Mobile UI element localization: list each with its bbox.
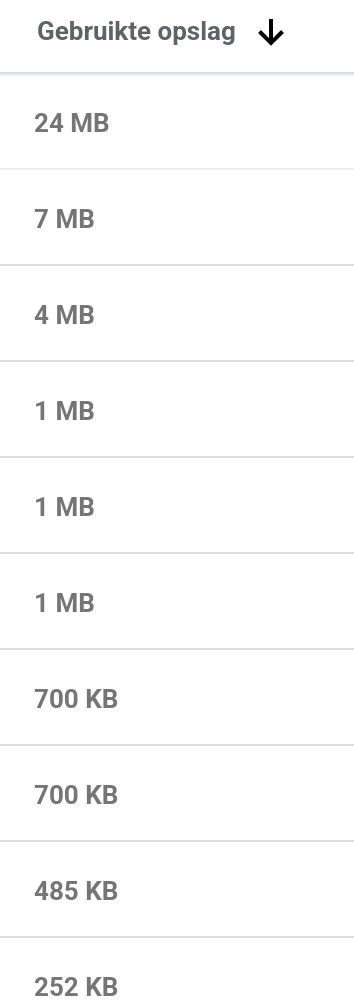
staticText: 1 MB (34, 396, 95, 426)
button[interactable]: 700 KB (0, 648, 354, 744)
other: Sort by size, descending (254, 14, 288, 48)
staticText: 700 KB (34, 780, 119, 810)
button[interactable]: Gebruikte opslag (0, 0, 354, 72)
staticText: 4 MB (34, 300, 95, 330)
staticText: Gebruikte opslag (37, 16, 236, 46)
button[interactable]: 1 MB (0, 456, 354, 552)
staticText: 1 MB (34, 588, 95, 618)
button[interactable]: 4 MB (0, 264, 354, 360)
staticText: 1 MB (34, 492, 95, 522)
staticText: 252 KB (34, 972, 119, 1002)
staticText: 7 MB (34, 204, 95, 234)
button[interactable]: 24 MB (0, 72, 354, 168)
button[interactable]: 700 KB (0, 744, 354, 840)
button[interactable]: 252 KB (0, 936, 354, 1004)
button[interactable]: 485 KB (0, 840, 354, 936)
button[interactable]: 1 MB (0, 360, 354, 456)
staticText: 700 KB (34, 684, 119, 714)
button[interactable]: 7 MB (0, 168, 354, 264)
button[interactable]: 1 MB (0, 552, 354, 648)
staticText: 485 KB (34, 876, 119, 906)
staticText: 24 MB (34, 108, 110, 138)
